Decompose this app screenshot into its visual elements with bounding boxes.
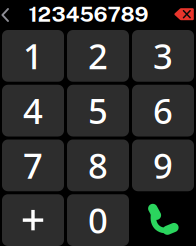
button[interactable]: 0 bbox=[67, 194, 129, 246]
button[interactable]: 3 bbox=[132, 30, 194, 82]
staticText: 3 bbox=[153, 33, 173, 79]
staticText: 9 bbox=[153, 142, 173, 188]
button[interactable]: 5 bbox=[67, 85, 129, 137]
staticText: 8 bbox=[88, 142, 108, 188]
staticText: 2 bbox=[88, 33, 108, 79]
button[interactable]: Call bbox=[132, 194, 194, 246]
button[interactable] bbox=[2, 194, 64, 246]
button[interactable]: Delete bbox=[170, 2, 194, 27]
staticText: 7 bbox=[23, 142, 43, 188]
staticText: 1 bbox=[23, 33, 43, 79]
button[interactable]: 8 bbox=[67, 139, 129, 191]
button[interactable]: 2 bbox=[67, 30, 129, 82]
staticText: 5 bbox=[88, 88, 108, 134]
staticText: 0 bbox=[88, 197, 108, 243]
staticText: 6 bbox=[153, 88, 173, 134]
staticText: 4 bbox=[23, 88, 43, 134]
button[interactable]: Back bbox=[1, 2, 15, 28]
button[interactable]: 1 bbox=[2, 30, 64, 82]
button[interactable]: 4 bbox=[2, 85, 64, 137]
button[interactable]: 9 bbox=[132, 139, 194, 191]
button[interactable]: 7 bbox=[2, 139, 64, 191]
staticText: 123456789 bbox=[28, 1, 148, 27]
button[interactable]: 6 bbox=[132, 85, 194, 137]
